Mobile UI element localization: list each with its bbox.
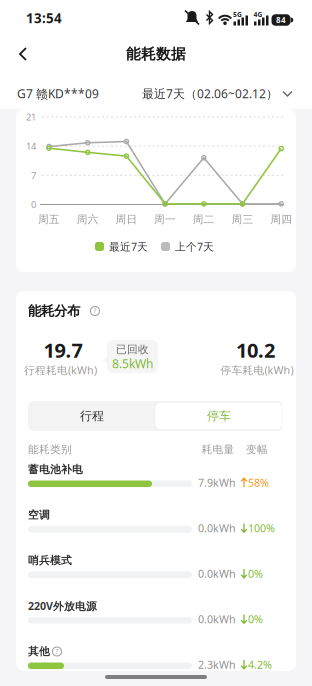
staticText: G7 赣KD***09 bbox=[17, 85, 99, 101]
button[interactable]: Back bbox=[4, 36, 44, 72]
staticText: 耗电量 bbox=[201, 443, 234, 456]
staticText: 220V外放电源 bbox=[28, 599, 97, 613]
staticText: 行程耗电(kWh) bbox=[24, 363, 97, 377]
staticText: ? bbox=[55, 647, 58, 656]
staticText: 能耗数据 bbox=[126, 45, 186, 63]
staticText: 0% bbox=[248, 612, 263, 626]
staticText: 能耗分布 bbox=[28, 303, 80, 319]
staticText: 能耗类别 bbox=[28, 443, 72, 456]
staticText: 最近7天 bbox=[109, 239, 148, 254]
staticText: 100% bbox=[248, 521, 275, 535]
staticText: 21 bbox=[26, 111, 36, 123]
staticText: 4.2% bbox=[248, 657, 272, 672]
staticText: 10.2 bbox=[236, 337, 275, 363]
staticText: 84 bbox=[276, 15, 286, 25]
button[interactable]: About energy distribution bbox=[87, 303, 103, 319]
staticText: 其他 bbox=[28, 645, 50, 658]
staticText: 0% bbox=[248, 566, 263, 581]
staticText: 周三 bbox=[231, 213, 253, 226]
staticText: 停车 bbox=[207, 409, 231, 423]
staticText: 已回收 bbox=[116, 343, 149, 356]
staticText: 7 bbox=[31, 169, 36, 181]
staticText: 空调 bbox=[28, 508, 50, 521]
staticText: 58% bbox=[248, 475, 269, 490]
staticText: 5G bbox=[233, 10, 242, 19]
staticText: 变幅 bbox=[246, 443, 268, 456]
staticText: 2.3kWh bbox=[198, 657, 236, 672]
button[interactable]: About other consumption bbox=[50, 644, 64, 658]
staticText: 0 bbox=[31, 198, 36, 211]
staticText: 周六 bbox=[77, 213, 99, 226]
staticText: 0.0kWh bbox=[198, 612, 236, 626]
staticText: 哨兵模式 bbox=[28, 554, 72, 567]
staticText: 0.0kWh bbox=[198, 521, 236, 535]
staticText: 0.0kWh bbox=[198, 566, 236, 581]
button[interactable]: 行程 bbox=[28, 401, 155, 431]
button[interactable]: 停车 bbox=[155, 403, 282, 429]
staticText: 13:54 bbox=[26, 9, 62, 27]
staticText: 周四 bbox=[270, 213, 292, 226]
staticText: 停车耗电(kWh) bbox=[220, 363, 293, 377]
staticText: 周二 bbox=[193, 213, 215, 226]
staticText: 蓄电池补电 bbox=[28, 463, 83, 476]
staticText: 周五 bbox=[38, 213, 60, 226]
staticText: 行程 bbox=[80, 409, 104, 423]
staticText: 4G bbox=[253, 10, 262, 19]
staticText: ? bbox=[93, 307, 96, 315]
staticText: 最近7天（02.06~02.12） bbox=[142, 85, 278, 101]
staticText: 14 bbox=[26, 140, 36, 152]
staticText: 周日 bbox=[115, 213, 137, 226]
staticText: 周一 bbox=[154, 213, 176, 226]
staticText: 8.5kWh bbox=[112, 355, 153, 371]
button[interactable]: Select period bbox=[133, 79, 296, 107]
staticText: 19.7 bbox=[43, 337, 82, 363]
staticText: 上个7天 bbox=[175, 239, 214, 254]
staticText: 7.9kWh bbox=[198, 475, 236, 490]
